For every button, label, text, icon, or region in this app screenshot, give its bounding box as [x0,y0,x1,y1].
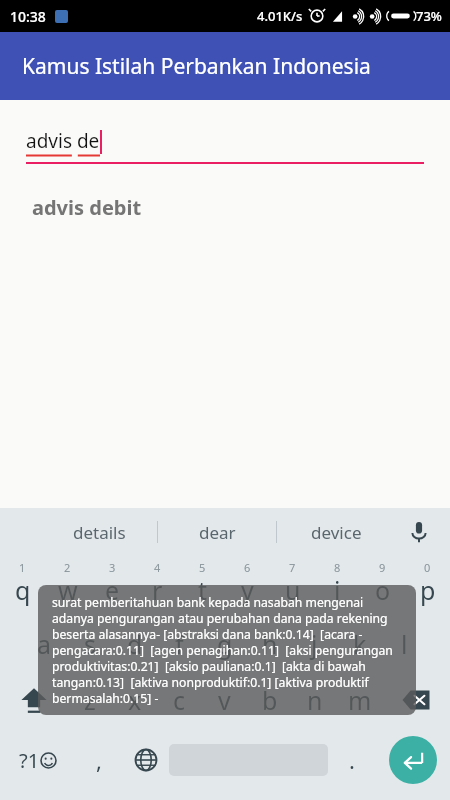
staticText: 3 [109,560,116,575]
staticText: 4 [154,560,161,575]
staticText: 2 [64,560,71,575]
button[interactable]: advis debit [32,194,418,221]
staticText: 6 [244,560,251,575]
staticText: m [348,683,372,717]
button[interactable]: advis de [26,128,424,164]
button[interactable]: n [292,672,337,728]
staticText: advis de [26,128,100,154]
staticText: c [173,683,186,717]
staticText: surat pemberitahuan bank kepada nasabah … [52,594,402,706]
staticText: 4.01K/s [257,7,303,25]
button[interactable]: 0 [405,556,450,616]
staticText: g [217,627,233,661]
button[interactable]: . [328,728,375,792]
button[interactable]: s [67,616,112,672]
staticText: , [96,745,102,775]
button[interactable]: 7 [270,556,315,616]
staticText: 8 [334,560,341,575]
staticText: b [262,683,278,717]
button[interactable]: Change language [122,728,169,792]
staticText: k [353,627,367,661]
staticText: h [262,627,278,661]
staticText: advis debit [32,194,142,221]
button[interactable]: a [22,616,67,672]
staticText: n [307,683,323,717]
staticText: f [175,627,184,661]
staticText: dear [199,521,236,544]
staticText: 73% [416,7,442,25]
button[interactable]: g [202,616,247,672]
button[interactable]: v [202,672,247,728]
button[interactable]: 1 [0,556,45,616]
button[interactable]: ?1 [0,728,75,792]
button[interactable]: l [382,616,427,672]
staticText: p [420,573,436,607]
staticText: ?1 [19,747,40,774]
button[interactable]: 9 [360,556,405,616]
staticText: q [15,573,31,607]
staticText: l [401,627,408,661]
staticText: v [218,683,231,717]
staticText: . [349,745,355,775]
button[interactable]: dear [158,508,277,556]
button[interactable]: Shift [0,672,67,728]
button[interactable]: Voice input [396,508,442,556]
staticText: 0 [424,560,431,575]
staticText: w [58,573,78,607]
button[interactable]: details [40,508,158,556]
staticText: a [37,627,52,661]
button[interactable]: c [157,672,202,728]
staticText: s [84,627,96,661]
staticText: 1 [19,560,26,575]
staticText: 9 [379,560,386,575]
staticText: e [105,573,120,607]
button[interactable]: 5 [180,556,225,616]
button[interactable]: z [67,672,112,728]
button[interactable]: b [247,672,292,728]
staticText: j [311,627,318,661]
button[interactable]: 4 [135,556,180,616]
staticText: x [128,683,142,717]
staticText: details [73,521,126,544]
staticText: 7 [289,560,296,575]
staticText: 5 [199,560,206,575]
staticText: Kamus Istilah Perbankan Indonesia [22,52,371,81]
staticText: i [334,573,341,607]
button[interactable]: m [337,672,382,728]
button[interactable]: Kamus Istilah Perbankan Indonesia [0,32,450,100]
staticText: y [241,573,254,607]
staticText: u [285,573,301,607]
button[interactable]: Backspace [382,672,450,728]
staticText: z [84,683,96,717]
button[interactable]: 3 [90,556,135,616]
button[interactable]: 6 [225,556,270,616]
staticText: device [311,521,362,544]
button[interactable]: d [112,616,157,672]
button[interactable]: j [292,616,337,672]
staticText: o [375,573,391,607]
button[interactable]: Enter [389,736,437,784]
staticText: d [127,627,143,661]
button[interactable]: , [75,728,122,792]
button[interactable]: device [277,508,396,556]
staticText: t [198,573,208,607]
button[interactable]: k [337,616,382,672]
button[interactable]: h [247,616,292,672]
button[interactable]: f [157,616,202,672]
button[interactable]: 2 [45,556,90,616]
staticText: 10:38 [10,7,46,26]
staticText: r [152,573,163,607]
button[interactable]: x [112,672,157,728]
button[interactable]: 8 [315,556,360,616]
